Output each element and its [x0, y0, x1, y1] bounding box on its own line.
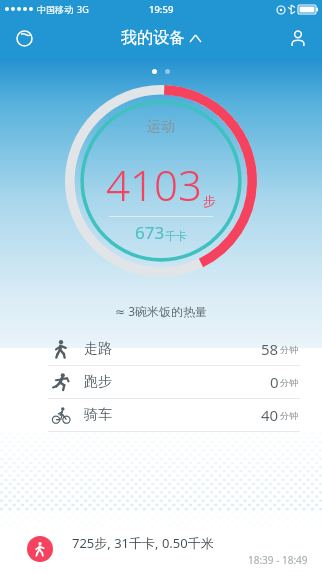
staticText: 18:39 - 18:49 — [248, 553, 308, 567]
button[interactable]: 骑车 — [0, 399, 322, 431]
staticText: 骑车 — [84, 406, 112, 424]
button[interactable]: Menu — [8, 22, 40, 54]
staticText: 分钟 — [280, 410, 298, 421]
staticText: 千卡 — [165, 229, 187, 243]
staticText: 40 — [261, 405, 279, 425]
staticText: 走路 — [84, 340, 112, 358]
staticText: ≈ 3碗米饭的热量 — [0, 303, 322, 319]
button[interactable]: 725步, 31千卡, 0.50千米 — [0, 526, 322, 572]
staticText: 58 — [261, 339, 279, 359]
button[interactable]: Profile — [282, 22, 314, 54]
button[interactable]: 走路 — [0, 333, 322, 365]
staticText: 分钟 — [280, 377, 298, 388]
staticText: 4103 — [106, 156, 202, 213]
staticText: 3G — [77, 3, 89, 15]
button[interactable]: 跑步 — [0, 366, 322, 398]
button[interactable]: 运动 — [86, 118, 236, 244]
staticText: 19:59 — [149, 3, 174, 16]
staticText: 步 — [203, 193, 216, 209]
staticText: 0 — [270, 372, 279, 392]
staticText: 跑步 — [84, 373, 112, 391]
staticText: 运动 — [147, 118, 175, 136]
staticText: 我的设备 — [121, 28, 185, 48]
staticText: 中国移动 — [37, 4, 73, 15]
button[interactable]: 我的设备 — [121, 28, 201, 48]
staticText: 分钟 — [280, 344, 298, 355]
staticText: 725步, 31千卡, 0.50千米 — [72, 534, 214, 552]
staticText: 673 — [135, 221, 165, 244]
